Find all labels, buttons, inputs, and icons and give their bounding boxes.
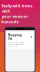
staticText: Easily add items with	[1, 3, 32, 14]
button[interactable]: Shopping list	[6, 32, 34, 49]
staticText: your voice or barcode	[1, 14, 28, 24]
staticText: I love recommended by	[8, 43, 24, 45]
staticText: Add the restaurant foods	[8, 42, 25, 43]
staticText: Shopping list	[8, 33, 22, 41]
staticText: Brian Oregon	[8, 45, 18, 47]
